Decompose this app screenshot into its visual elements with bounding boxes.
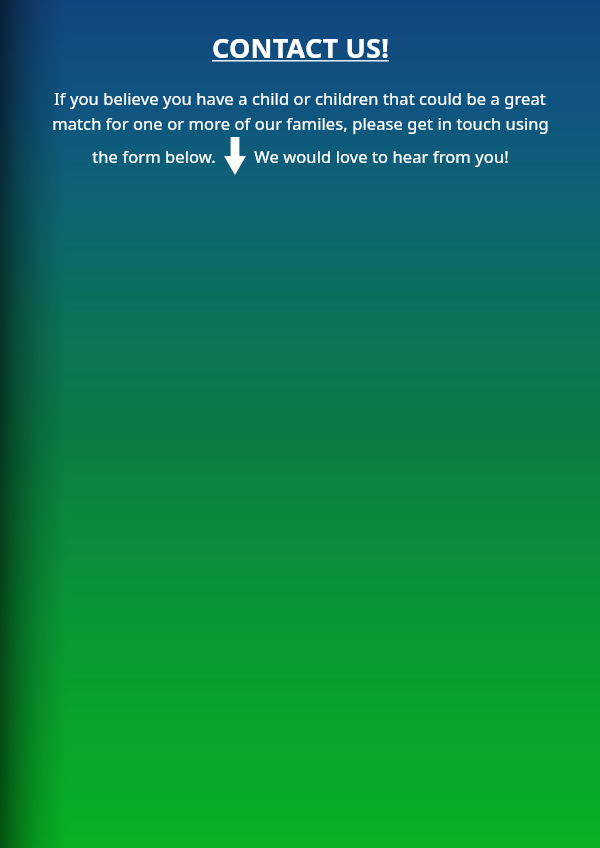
staticText: the form below. bbox=[92, 145, 216, 167]
staticText: We would love to hear from you! bbox=[254, 145, 509, 167]
staticText: CONTACT US! bbox=[208, 29, 393, 66]
button[interactable]: If you believe you have a child or child… bbox=[0, 87, 600, 175]
staticText: If you believe you have a child or child… bbox=[54, 87, 546, 109]
other: Scroll down to the form bbox=[224, 137, 246, 175]
staticText: match for one or more of our familes, pl… bbox=[52, 112, 549, 134]
button[interactable]: CONTACT US! bbox=[200, 27, 401, 68]
